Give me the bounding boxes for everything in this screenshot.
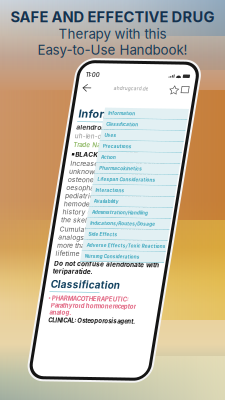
staticText: BLACK BOX ALERT — [91, 150, 153, 157]
staticText: Precautions — [117, 142, 146, 148]
staticText: Administration/Handling — [117, 208, 173, 214]
button[interactable]: Classification — [113, 118, 197, 129]
staticText: Classification — [87, 278, 156, 289]
staticText: Lifespan Considerations — [117, 175, 175, 181]
button[interactable]: Uses — [113, 129, 197, 140]
staticText: Nursing Considerations — [117, 252, 172, 258]
button[interactable]: Lifespan Considerations — [113, 173, 197, 184]
button[interactable]: Precautions — [113, 140, 197, 151]
staticText: Information — [87, 107, 149, 119]
button[interactable]: Interactions — [113, 184, 197, 195]
staticText: Do not confuse alendronate with teripara… — [87, 259, 192, 274]
button[interactable]: Adverse Effects/Toxic Reactions — [113, 239, 197, 250]
staticText: Availability — [117, 197, 142, 203]
staticText: Pharmacokinetics — [117, 164, 160, 170]
staticText: Increase in the risk of severe, unknown … — [87, 159, 190, 223]
button[interactable]: Administration/Handling — [113, 206, 197, 217]
button[interactable]: Indications/Routes/Dosage — [113, 217, 197, 228]
staticText: Interactions — [117, 186, 146, 192]
button[interactable]: Information — [113, 107, 197, 118]
staticText: Indications/Routes/Dosage — [117, 219, 182, 225]
button[interactable]: Bookmark — [173, 83, 184, 92]
button[interactable]: Back — [85, 83, 98, 92]
staticText: PHARMACOTHERAPEUTIC: Parathyroid hormone… — [91, 294, 176, 315]
staticText: Information — [117, 109, 144, 115]
button[interactable]: Nursing Considerations — [113, 250, 197, 261]
button[interactable]: Side Effects — [113, 228, 197, 239]
staticText: ahdrugcard.de — [118, 84, 153, 90]
button[interactable]: Availability — [113, 195, 197, 206]
button[interactable]: Action — [113, 151, 197, 162]
staticText: SAFE AND EFFECTIVE DRUG — [10, 8, 214, 26]
button[interactable]: Tabs — [184, 83, 195, 92]
staticText: Therapy with this — [58, 26, 166, 42]
staticText: Cumulative use of parathyroid analogs (e… — [87, 224, 185, 257]
staticText: Trade Name: Fosamax — [87, 140, 151, 148]
staticText: uh-len-droh-nate — [87, 132, 140, 139]
staticText: Adverse Effects/Toxic Reactions — [117, 241, 196, 247]
button[interactable]: Pharmacokinetics — [113, 162, 197, 173]
staticText: Easy-to-Use Handbook! — [37, 42, 187, 58]
staticText: alendronate — [87, 122, 126, 131]
staticText: Classification — [117, 120, 149, 126]
staticText: 11:00 — [88, 70, 102, 78]
staticText: • — [87, 294, 89, 300]
staticText: CLINICAL: Osteoporosis agent. — [91, 316, 178, 323]
